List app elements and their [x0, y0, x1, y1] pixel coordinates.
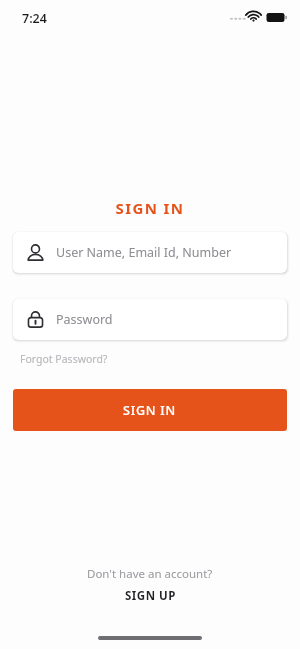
staticText: 7:24	[22, 10, 47, 27]
button[interactable]: SIGN IN	[13, 389, 287, 431]
staticText: Don't have an account?	[87, 566, 213, 582]
staticText: SIGN IN	[123, 402, 177, 419]
staticText: Forgot Password?	[20, 352, 108, 366]
button[interactable]: User Name, Email Id, Number	[13, 232, 287, 273]
staticText: User Name, Email Id, Number	[56, 244, 232, 261]
staticText: Password	[56, 311, 113, 328]
staticText: SIGN UP	[125, 588, 176, 604]
staticText: SIGN IN	[0, 198, 300, 218]
button[interactable]: SIGN UP	[119, 587, 182, 605]
button[interactable]: Forgot Password?	[18, 350, 110, 368]
button[interactable]: Password	[13, 299, 287, 340]
